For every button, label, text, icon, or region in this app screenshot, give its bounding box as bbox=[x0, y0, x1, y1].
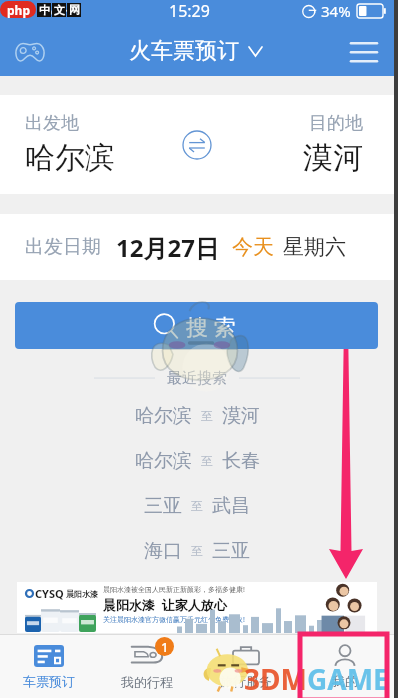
staticText: 出发日期 bbox=[25, 235, 101, 259]
button[interactable]: 火车票预订 bbox=[129, 37, 262, 65]
staticText: 三亚 bbox=[144, 494, 182, 518]
staticText: CYSQ bbox=[35, 586, 64, 601]
staticText: 车票预订 bbox=[23, 673, 75, 689]
staticText: aba bbox=[38, 3, 59, 19]
button[interactable]: 车票预订 bbox=[0, 635, 98, 698]
staticText: 哈尔滨 bbox=[135, 404, 192, 428]
staticText: 星期六 bbox=[283, 234, 346, 260]
button[interactable]: Swap departure and destination bbox=[175, 123, 219, 167]
staticText: 漠河 bbox=[303, 139, 363, 177]
staticText: 目的地 bbox=[309, 112, 363, 135]
button[interactable]: 1 bbox=[98, 635, 196, 698]
button[interactable]: 哈尔滨 bbox=[0, 393, 394, 438]
staticText: 今天 bbox=[232, 234, 274, 260]
staticText: 搜 索 bbox=[186, 311, 236, 341]
staticText: 武昌 bbox=[212, 494, 250, 518]
staticText: 1 bbox=[161, 638, 169, 656]
staticText: 长春 bbox=[222, 449, 260, 473]
staticText: 34% bbox=[321, 1, 351, 21]
staticText: 3DM bbox=[244, 660, 307, 698]
staticText: php bbox=[7, 2, 30, 18]
staticText: 文 bbox=[54, 3, 65, 17]
staticText: 旅行服务 bbox=[220, 673, 272, 689]
button[interactable]: Menu bbox=[344, 31, 384, 71]
staticText: 最近搜索 bbox=[167, 369, 227, 388]
staticText: 网 bbox=[69, 3, 80, 17]
staticText: 漠河 bbox=[222, 404, 260, 428]
staticText: 火车票预订 bbox=[129, 37, 239, 65]
staticText: 三亚 bbox=[212, 539, 250, 563]
staticText: 出发地 bbox=[25, 112, 79, 135]
staticText: 中 bbox=[39, 3, 50, 17]
button[interactable]: 搜 索 bbox=[15, 302, 378, 349]
staticText: 关注晨阳水漆官方微信赢万千元红包免费领取! bbox=[103, 615, 245, 625]
button[interactable]: Games bbox=[8, 29, 52, 73]
staticText: 我的行程 bbox=[121, 674, 173, 690]
staticText: 我的 bbox=[332, 673, 358, 689]
staticText: 12月27日 bbox=[116, 231, 219, 264]
button[interactable]: 目的地 bbox=[219, 112, 363, 177]
button[interactable]: 出发日期 bbox=[0, 214, 394, 280]
button[interactable]: 出发地 bbox=[25, 112, 175, 177]
staticText: 哈尔滨 bbox=[25, 139, 115, 177]
button[interactable]: Advertisement bbox=[17, 582, 377, 633]
staticText: 晨阳水漆 bbox=[66, 589, 98, 599]
staticText: 晨阳水漆被全国人民新正新颜彩，多福多健康! bbox=[103, 585, 245, 595]
button[interactable]: 旅行服务 bbox=[196, 635, 295, 698]
staticText: 至 bbox=[191, 498, 203, 513]
button[interactable]: 哈尔滨 bbox=[0, 438, 394, 483]
staticText: 海口 bbox=[144, 539, 182, 563]
staticText: 晨阳水漆 让家人放心 bbox=[103, 596, 227, 614]
staticText: 至 bbox=[191, 543, 203, 558]
staticText: 至 bbox=[201, 453, 213, 468]
button[interactable]: 我的 bbox=[295, 635, 394, 698]
button[interactable]: 海口 bbox=[0, 528, 394, 573]
button[interactable]: 三亚 bbox=[0, 483, 394, 528]
staticText: 15:29 bbox=[169, 0, 210, 22]
staticText: GAME bbox=[307, 660, 389, 698]
staticText: 至 bbox=[201, 408, 213, 423]
staticText: 哈尔滨 bbox=[135, 449, 192, 473]
